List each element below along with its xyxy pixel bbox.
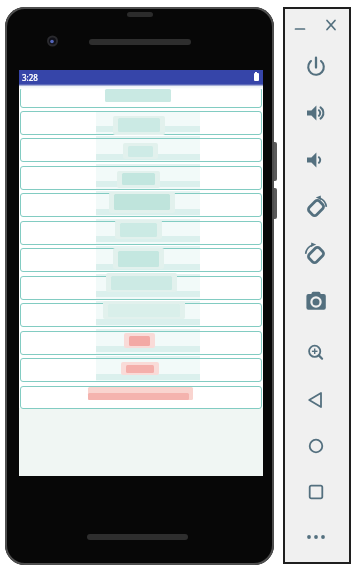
button[interactable] xyxy=(298,428,334,464)
button[interactable] xyxy=(20,303,262,327)
button[interactable] xyxy=(298,49,334,85)
button[interactable] xyxy=(20,331,262,355)
button[interactable] xyxy=(298,284,334,320)
button[interactable] xyxy=(20,358,262,382)
button[interactable] xyxy=(298,335,334,371)
button[interactable] xyxy=(298,142,334,178)
button[interactable] xyxy=(20,166,262,190)
button[interactable] xyxy=(298,519,334,555)
button[interactable] xyxy=(298,474,334,510)
button[interactable] xyxy=(20,276,262,300)
button[interactable] xyxy=(20,111,262,135)
button[interactable] xyxy=(298,95,334,131)
button[interactable] xyxy=(20,386,262,409)
button[interactable] xyxy=(298,190,334,226)
button[interactable] xyxy=(323,17,339,33)
staticText: 3:28 xyxy=(22,72,38,83)
button[interactable] xyxy=(20,248,262,272)
button[interactable] xyxy=(20,221,262,245)
button[interactable] xyxy=(20,193,262,217)
button[interactable] xyxy=(20,87,262,108)
button[interactable] xyxy=(20,138,262,162)
button[interactable] xyxy=(298,237,334,273)
button[interactable] xyxy=(292,21,308,37)
button[interactable] xyxy=(298,382,334,418)
